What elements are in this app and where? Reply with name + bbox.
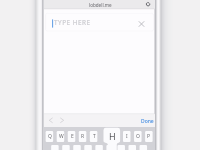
staticText: H (109, 130, 116, 142)
button[interactable]: P (145, 131, 153, 142)
button[interactable]: E (68, 131, 76, 142)
button[interactable]: O (134, 131, 142, 142)
button[interactable]: Reload page (144, 0, 154, 9)
button[interactable]: Next field (58, 114, 68, 127)
staticText: W (59, 133, 64, 140)
staticText: P (147, 133, 151, 140)
button[interactable]: T (90, 131, 98, 142)
staticText: I (126, 133, 128, 140)
staticText: E (71, 133, 74, 140)
staticText: Q (48, 133, 52, 140)
staticText: Done (141, 118, 154, 125)
button[interactable]: R (79, 131, 87, 142)
button[interactable] (101, 131, 109, 142)
staticText: R (81, 133, 85, 140)
staticText: T (93, 133, 96, 140)
staticText: lobdell.me (89, 2, 112, 8)
button[interactable]: Q (46, 131, 54, 142)
button[interactable]: W (57, 131, 65, 142)
button[interactable]: Done (137, 114, 157, 127)
staticText: O (136, 133, 140, 140)
button[interactable]: TYPE HERE (46, 14, 132, 31)
button[interactable]: I (123, 131, 131, 142)
staticText: TYPE HERE (54, 18, 91, 27)
button[interactable] (112, 131, 120, 142)
button[interactable]: Previous field (46, 114, 56, 127)
button[interactable]: Clear text (134, 16, 148, 30)
